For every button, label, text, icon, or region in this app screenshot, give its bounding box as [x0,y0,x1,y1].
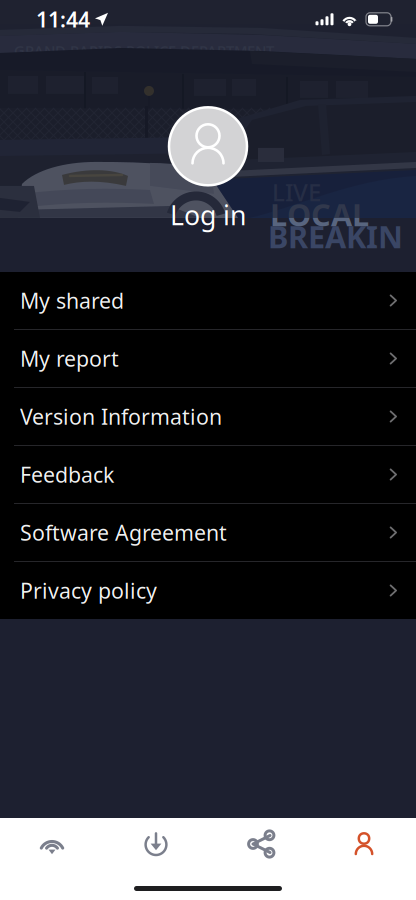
button[interactable]: My report [0,330,416,388]
staticText: LIVE [272,176,321,208]
staticText: Privacy policy [20,576,157,605]
button[interactable]: Feedback [0,446,416,504]
staticText: LOCAL [270,194,369,235]
button[interactable]: My shared [0,272,416,330]
button[interactable]: Profile [312,821,416,867]
button[interactable]: Share [208,821,312,867]
button[interactable]: Version Information [0,388,416,446]
button[interactable]: Privacy policy [0,562,416,619]
staticText: BREAKIN [268,216,403,257]
staticText: Log in [170,197,246,233]
staticText: 11:44 [36,5,90,33]
staticText: My shared [20,286,124,315]
staticText: My report [20,344,119,373]
staticText: GRAND RAPIDS POLICE DEPARTMENT [14,41,274,60]
button[interactable]: Nearby [0,821,104,867]
staticText: Software Agreement [20,518,227,547]
staticText: Version Information [20,402,222,431]
staticText: Feedback [20,460,114,489]
button[interactable]: Downloads [104,821,208,867]
button[interactable]: Software Agreement [0,504,416,562]
button[interactable]: Log in [148,185,268,239]
